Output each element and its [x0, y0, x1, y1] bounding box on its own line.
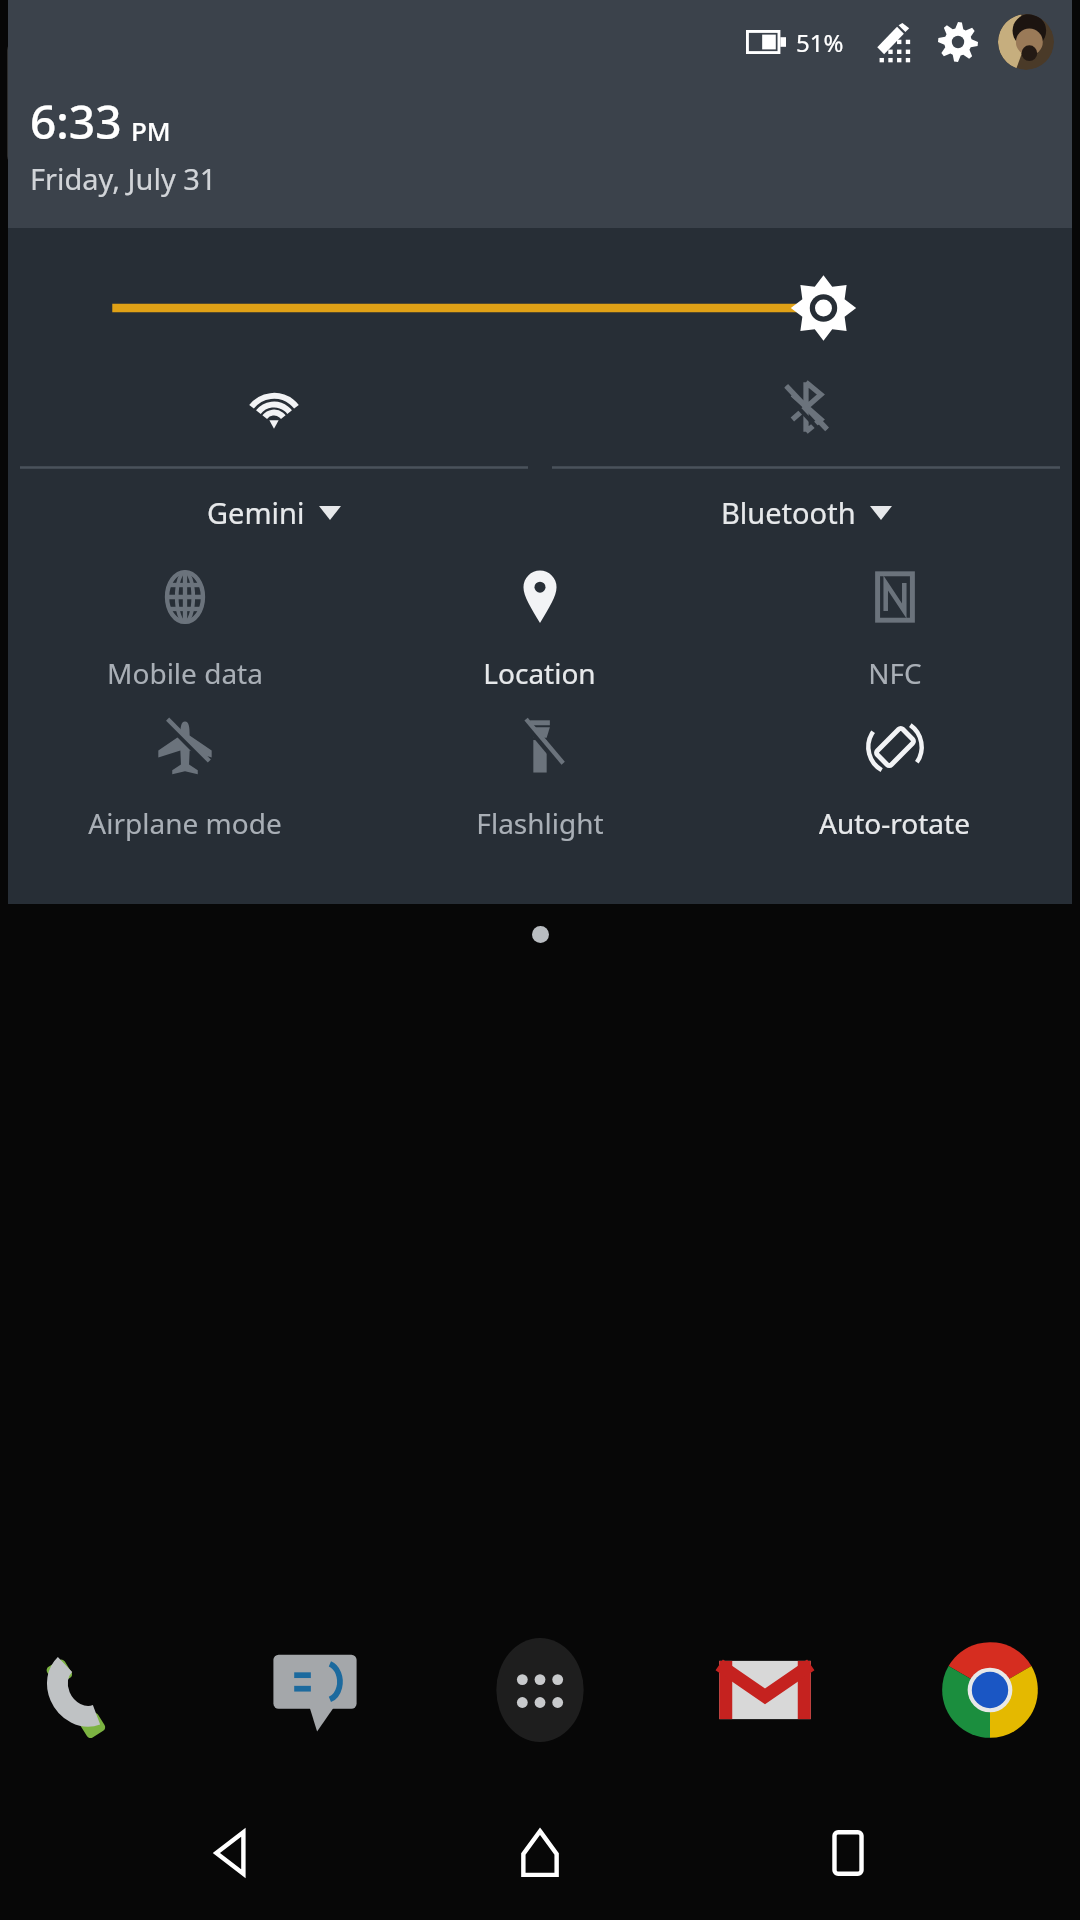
staticText: 6:33 [30, 90, 122, 153]
button[interactable]: Flashlight [362, 718, 717, 842]
staticText: Friday, July 31 [30, 159, 217, 198]
button[interactable]: Mobile data [8, 568, 362, 692]
button[interactable]: Settings [930, 14, 986, 70]
staticText: 51% [796, 26, 844, 59]
staticText: Flashlight [476, 804, 604, 842]
button[interactable]: Location [362, 568, 717, 692]
button[interactable]: Phone [22, 1622, 158, 1758]
button[interactable]: Back [158, 1798, 308, 1908]
staticText: Airplane mode [88, 804, 282, 842]
button[interactable]: Auto-rotate [717, 718, 1072, 842]
button[interactable]: User profile [998, 14, 1054, 70]
button[interactable]: Home [465, 1798, 615, 1908]
staticText: NFC [868, 654, 922, 692]
button[interactable]: Recents [773, 1798, 923, 1908]
staticText: Gemini [207, 493, 305, 532]
button[interactable]: NFC [717, 568, 1072, 692]
staticText: PM [131, 113, 171, 148]
button[interactable]: Chrome [922, 1622, 1058, 1758]
button[interactable]: Airplane mode [8, 718, 362, 842]
button[interactable]: Gemini [8, 368, 540, 532]
button[interactable]: Edit quick settings [866, 14, 922, 70]
button[interactable]: All apps [472, 1622, 608, 1758]
staticText: Auto-rotate [819, 804, 970, 842]
button[interactable]: Gmail [697, 1622, 833, 1758]
staticText: Mobile data [107, 654, 263, 692]
staticText: Bluetooth [721, 493, 856, 532]
button[interactable]: Messages [247, 1622, 383, 1758]
button[interactable]: Bluetooth [540, 368, 1072, 532]
button[interactable]: Brightness [8, 270, 1072, 346]
staticText: Location [483, 654, 596, 692]
